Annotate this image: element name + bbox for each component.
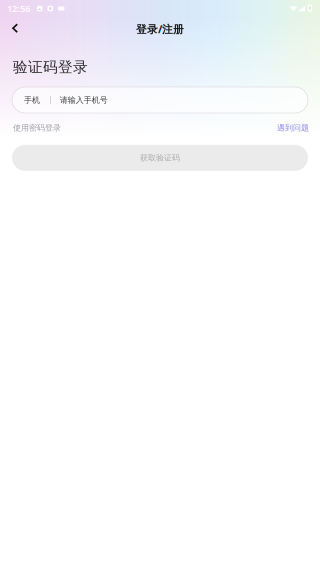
- staticText: 手机: [24, 95, 40, 105]
- staticText: 验证码登录: [13, 58, 88, 76]
- button[interactable]: 使用密码登录: [13, 123, 61, 133]
- staticText: 请输入手机号: [60, 95, 108, 105]
- staticText: 登录/注册: [136, 22, 184, 36]
- staticText: 获取验证码: [140, 153, 180, 163]
- button[interactable]: 返回: [4, 18, 26, 40]
- staticText: 遇到问题: [277, 123, 309, 133]
- staticText: 12:56: [7, 2, 30, 15]
- staticText: 使用密码登录: [13, 123, 61, 133]
- button[interactable]: 获取验证码: [12, 145, 308, 171]
- button[interactable]: 遇到问题: [277, 123, 309, 133]
